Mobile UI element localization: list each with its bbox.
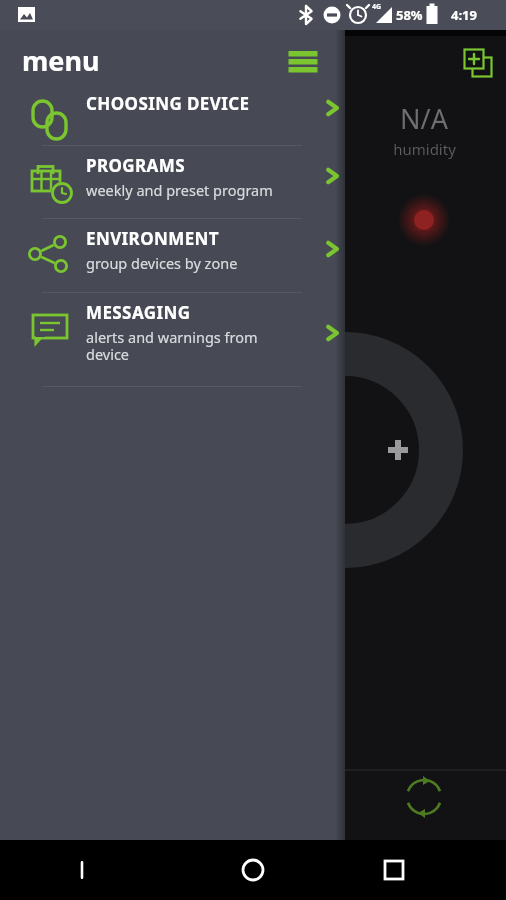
- staticText: weekly and preset program: [86, 180, 273, 200]
- button[interactable]: MESSAGING: [0, 295, 345, 385]
- button[interactable]: ENVIRONMENT: [0, 221, 345, 293]
- staticText: alerts and warnings from device: [86, 327, 258, 364]
- staticText: group devices by zone: [86, 253, 238, 273]
- staticText: N/A: [400, 100, 448, 137]
- staticText: CHOOSING DEVICE: [86, 92, 250, 115]
- button[interactable]: Recent apps: [364, 840, 424, 900]
- staticText: MESSAGING: [86, 301, 191, 324]
- button[interactable]: PROGRAMS: [0, 148, 345, 220]
- staticText: 4G: [372, 2, 382, 12]
- button[interactable]: Home: [223, 840, 283, 900]
- staticText: ENVIRONMENT: [86, 227, 220, 250]
- button[interactable]: Add device: [460, 45, 496, 81]
- staticText: 58%: [396, 6, 423, 24]
- staticText: menu: [22, 42, 100, 79]
- button[interactable]: Refresh: [400, 773, 448, 821]
- staticText: 4:19: [451, 6, 477, 24]
- staticText: humidity: [393, 139, 456, 159]
- button[interactable]: CHOOSING DEVICE: [0, 86, 345, 145]
- button[interactable]: Close menu: [281, 38, 325, 82]
- staticText: PROGRAMS: [86, 154, 185, 177]
